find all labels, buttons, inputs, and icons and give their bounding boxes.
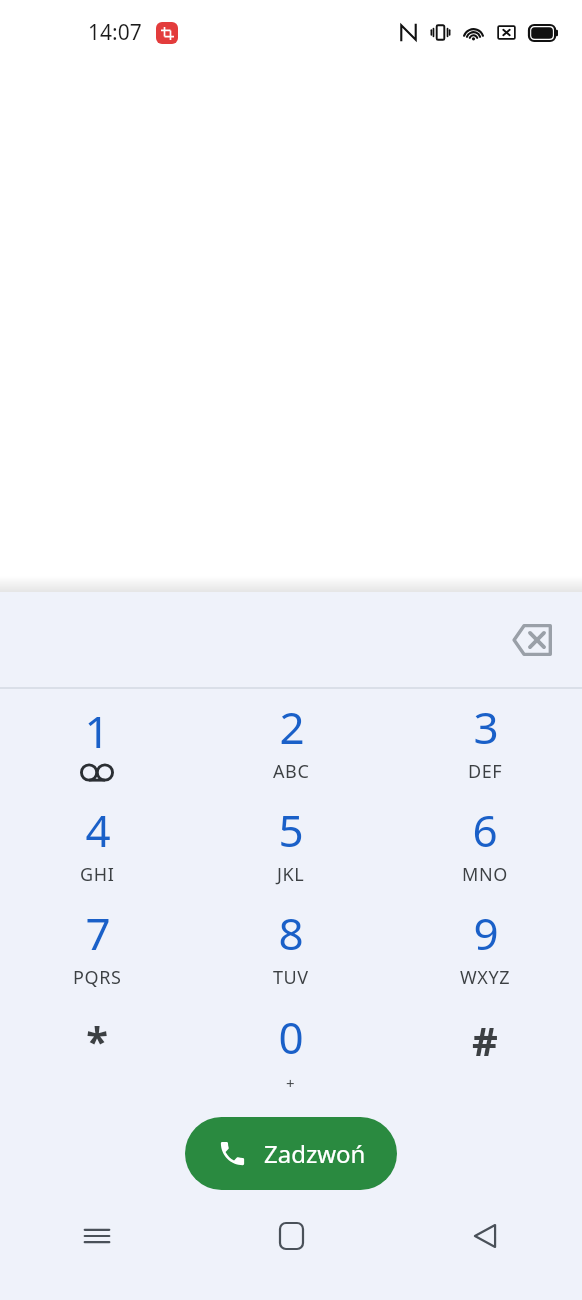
staticText: 3 <box>473 697 499 757</box>
staticText: 14:07 <box>88 18 142 47</box>
staticText: 2 <box>279 697 305 757</box>
staticText: GHI <box>80 862 115 887</box>
button[interactable]: Back <box>388 1201 582 1271</box>
staticText: 0 <box>278 1007 304 1067</box>
staticText: 4 <box>85 800 111 860</box>
staticText: ABC <box>273 759 310 784</box>
button[interactable]: 3 <box>388 689 582 792</box>
button[interactable]: 7 <box>0 895 194 998</box>
button[interactable]: 1 <box>0 689 194 792</box>
staticText: 6 <box>472 800 498 860</box>
button[interactable]: 0 <box>194 998 388 1101</box>
button[interactable]: 5 <box>194 792 388 895</box>
staticText: + <box>286 1073 296 1093</box>
staticText: 9 <box>473 903 499 963</box>
staticText: # <box>472 1013 498 1067</box>
button[interactable]: Backspace <box>500 608 564 672</box>
button[interactable]: # <box>388 998 582 1101</box>
staticText: Zadzwoń <box>264 1137 366 1170</box>
staticText: JKL <box>277 862 305 887</box>
button[interactable]: Zadzwoń <box>185 1117 397 1190</box>
staticText: * <box>86 1013 108 1067</box>
button[interactable]: 9 <box>388 895 582 998</box>
button[interactable]: 2 <box>194 689 388 792</box>
button[interactable]: 8 <box>194 895 388 998</box>
staticText: MNO <box>462 862 508 887</box>
staticText: PQRS <box>73 965 122 990</box>
staticText: 5 <box>278 800 304 860</box>
button[interactable]: 4 <box>0 792 194 895</box>
staticText: TUV <box>273 965 309 990</box>
button[interactable]: * <box>0 998 194 1101</box>
staticText: WXYZ <box>460 965 511 990</box>
button[interactable]: Recent apps <box>0 1201 194 1271</box>
staticText: DEF <box>468 759 503 784</box>
button[interactable]: Home <box>194 1201 388 1271</box>
staticText: 7 <box>85 903 111 963</box>
staticText: 8 <box>278 903 304 963</box>
staticText: 1 <box>84 701 110 761</box>
button[interactable]: 6 <box>388 792 582 895</box>
